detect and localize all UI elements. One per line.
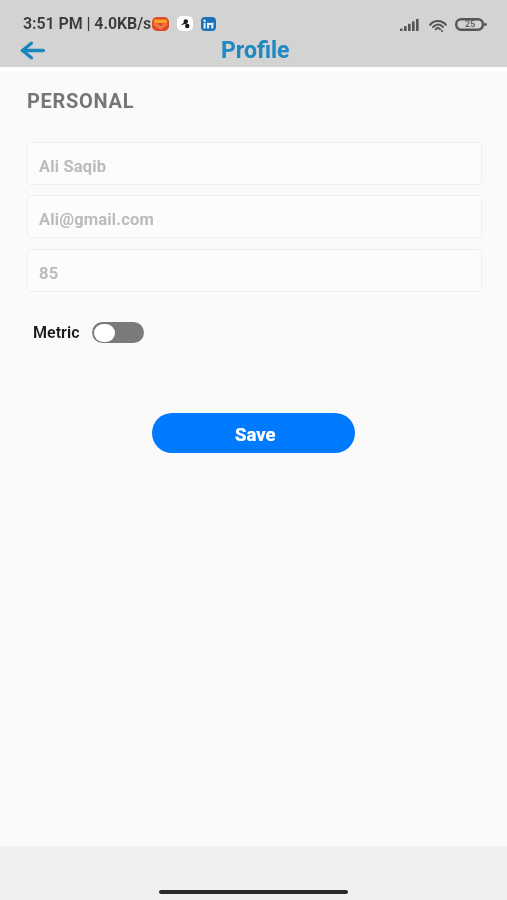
staticText: Save: [235, 424, 276, 446]
button[interactable]: Save: [152, 413, 355, 453]
staticText: Metric: [33, 323, 80, 342]
staticText: Ali Saqib: [39, 157, 107, 176]
staticText: 3:51 PM | 4.0KB/s: [23, 14, 152, 33]
staticText: 85: [39, 264, 59, 283]
staticText: 25: [465, 19, 476, 30]
button[interactable]: Ali@gmail.com: [27, 195, 482, 238]
button[interactable]: 85: [27, 249, 482, 292]
button[interactable]: Ali Saqib: [27, 142, 482, 185]
staticText: Ali@gmail.com: [39, 210, 155, 229]
button[interactable]: Back: [10, 34, 54, 67]
staticText: PERSONAL: [27, 89, 135, 112]
button[interactable]: Metric toggle: [92, 322, 144, 343]
staticText: Profile: [221, 37, 290, 64]
